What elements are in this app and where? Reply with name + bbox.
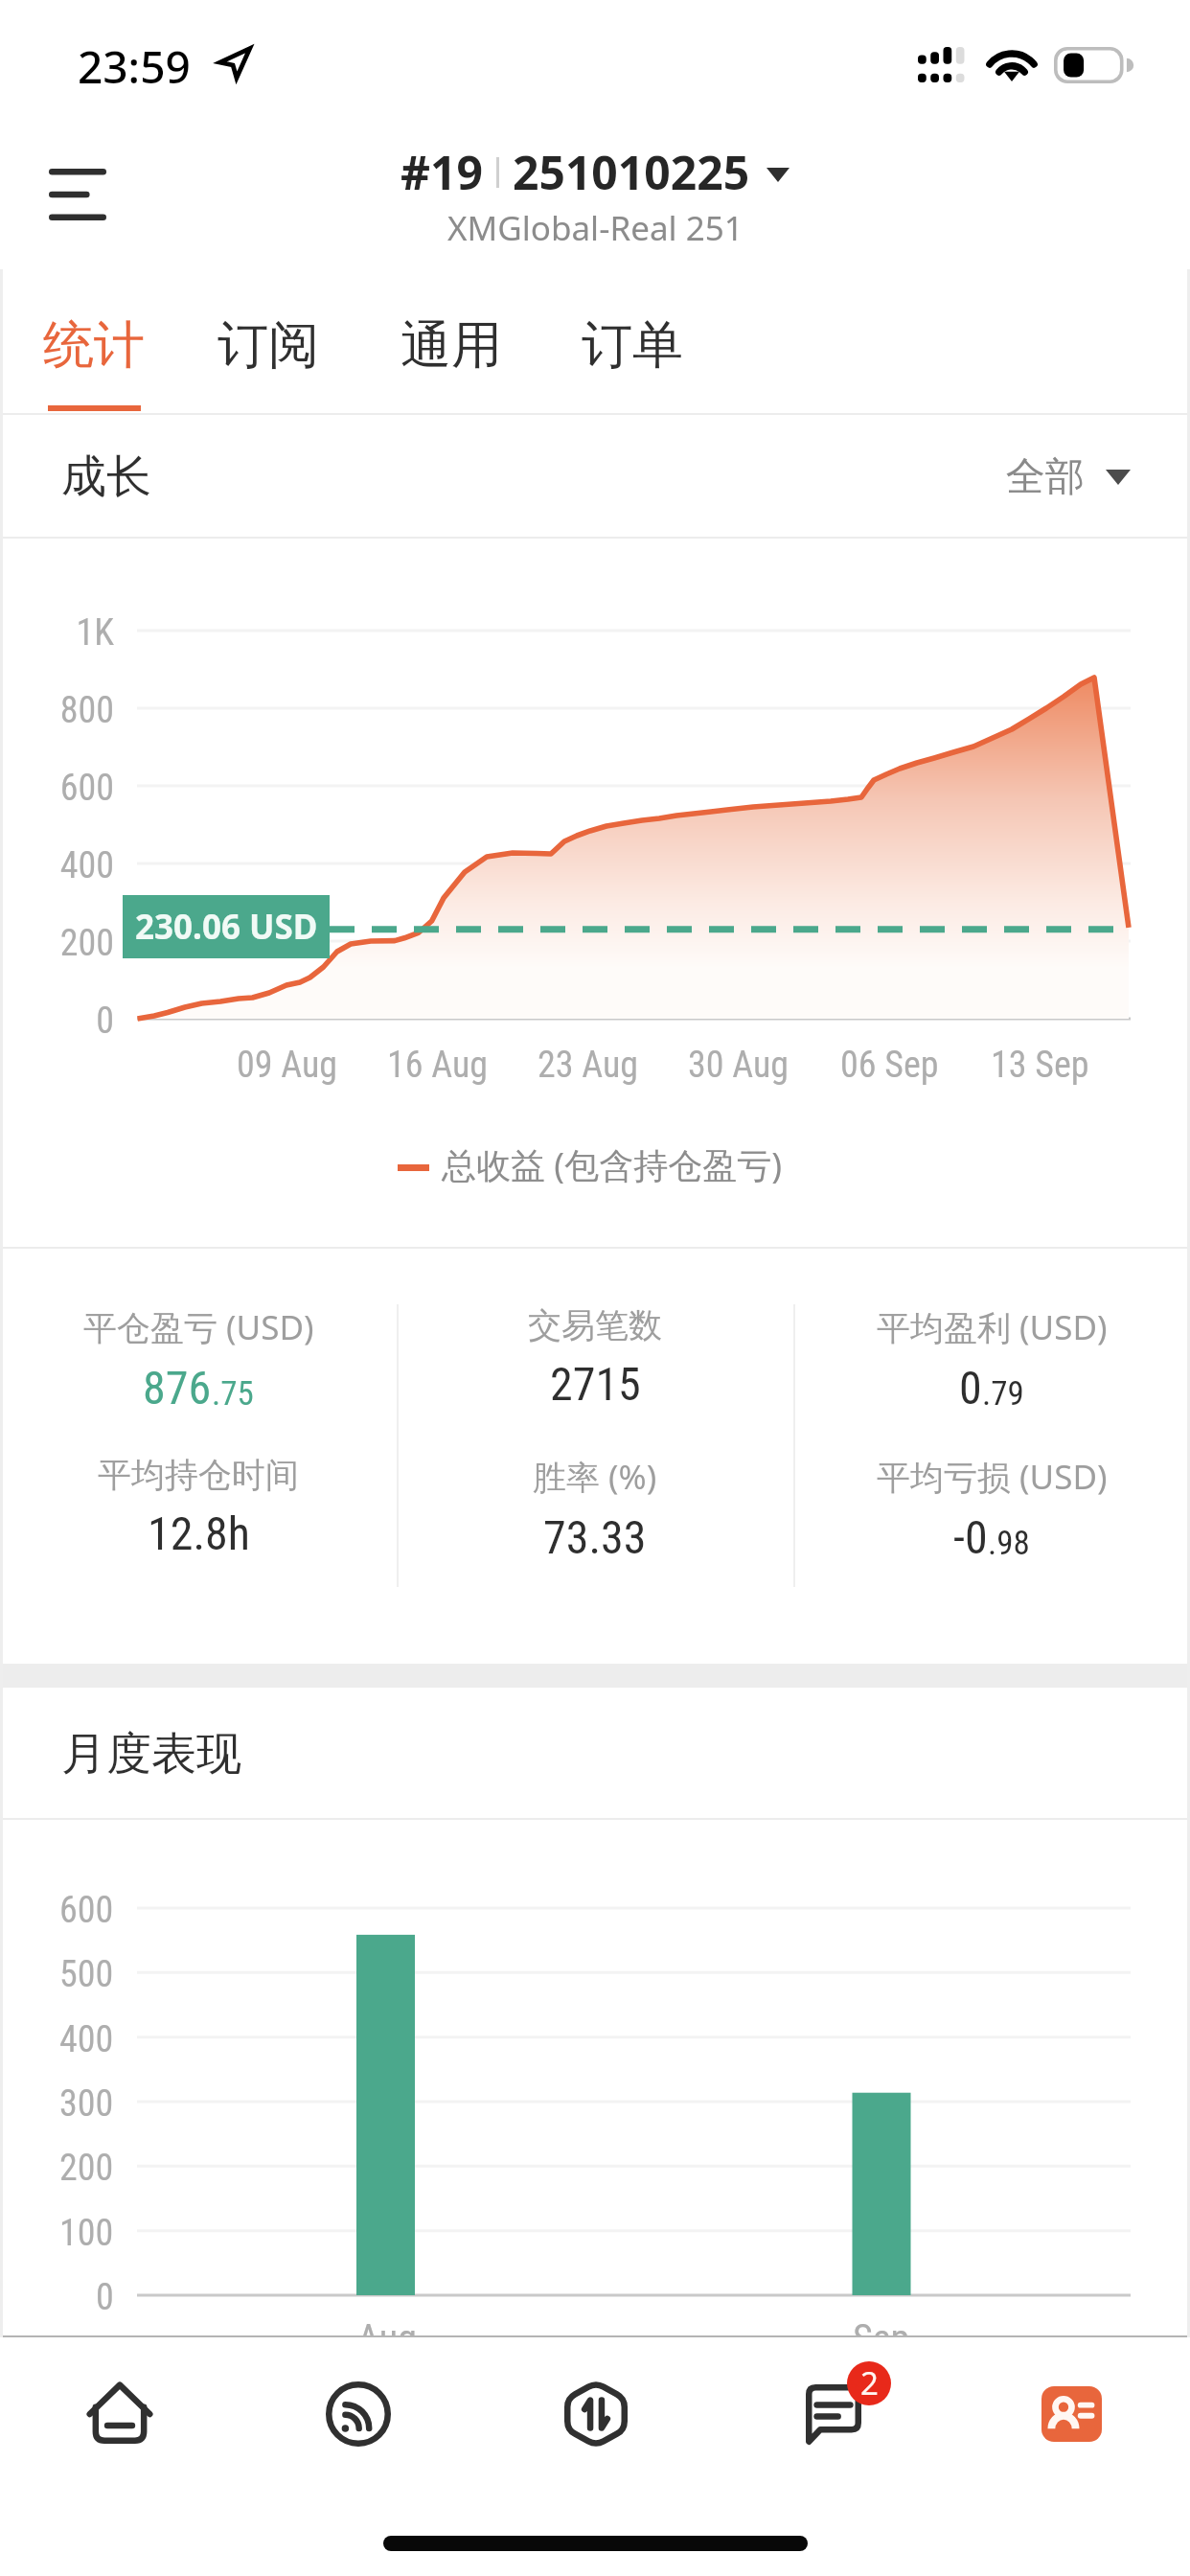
button[interactable]: 交易笔数 bbox=[397, 1304, 793, 1411]
staticText: 876 bbox=[143, 1361, 212, 1414]
button[interactable]: 通用 bbox=[390, 268, 513, 415]
staticText: 全部 bbox=[1006, 452, 1085, 502]
staticText: 平仓盈亏 (USD) bbox=[83, 1304, 314, 1350]
staticText: .79 bbox=[982, 1374, 1024, 1414]
staticText: 400 bbox=[59, 2018, 114, 2061]
staticText: 1K bbox=[76, 611, 114, 655]
staticText: .75 bbox=[212, 1374, 254, 1414]
staticText: #19 bbox=[400, 141, 483, 203]
button[interactable]: 平均亏损 (USD) bbox=[793, 1454, 1190, 1564]
button[interactable]: 平均持仓时间 bbox=[0, 1454, 397, 1560]
staticText: 0 bbox=[96, 1000, 114, 1043]
staticText: 交易笔数 bbox=[528, 1304, 662, 1346]
staticText: 平均亏损 (USD) bbox=[877, 1454, 1108, 1500]
staticText: 2715 bbox=[550, 1357, 641, 1411]
button[interactable]: Feed bbox=[239, 2337, 477, 2491]
staticText: 平均盈利 (USD) bbox=[877, 1304, 1108, 1350]
staticText: 200 bbox=[59, 922, 114, 965]
staticText: 13 Sep bbox=[991, 1044, 1089, 1087]
staticText: 300 bbox=[59, 2082, 114, 2126]
staticText: 成长 bbox=[61, 448, 151, 505]
staticText: 23 Aug bbox=[538, 1044, 639, 1087]
staticText: 251010225 bbox=[513, 141, 750, 203]
staticText: 月度表现 bbox=[61, 1726, 241, 1782]
staticText: Sep bbox=[853, 2316, 910, 2361]
staticText: 统计 bbox=[43, 313, 145, 378]
button[interactable]: 统计 bbox=[33, 268, 155, 415]
staticText: 胜率 (%) bbox=[533, 1454, 657, 1500]
button[interactable]: 平仓盈亏 (USD) bbox=[0, 1304, 397, 1414]
staticText: 100 bbox=[59, 2212, 114, 2255]
button[interactable]: 订单 bbox=[571, 268, 694, 415]
staticText: 800 bbox=[59, 689, 114, 732]
staticText: 订单 bbox=[582, 313, 683, 378]
button[interactable]: 订阅 bbox=[207, 268, 330, 415]
button[interactable]: Trade bbox=[477, 2337, 715, 2491]
staticText: 2 bbox=[860, 2361, 879, 2404]
staticText: Aug bbox=[357, 2316, 417, 2361]
staticText: 600 bbox=[59, 767, 114, 810]
button[interactable]: #19 bbox=[400, 141, 790, 251]
staticText: 16 Aug bbox=[387, 1044, 489, 1087]
staticText: 总收益 (包含持仓盈亏) bbox=[442, 1141, 782, 1188]
button[interactable]: 胜率 (%) bbox=[397, 1454, 793, 1564]
button[interactable]: 平均盈利 (USD) bbox=[793, 1304, 1190, 1414]
button[interactable]: Account bbox=[952, 2337, 1190, 2491]
staticText: 400 bbox=[59, 844, 114, 887]
staticText: 500 bbox=[59, 1953, 114, 1996]
staticText: 通用 bbox=[400, 313, 502, 378]
staticText: 09 Aug bbox=[237, 1044, 338, 1087]
staticText: 订阅 bbox=[217, 313, 319, 378]
staticText: 0 bbox=[96, 2276, 114, 2319]
staticText: 30 Aug bbox=[688, 1044, 790, 1087]
staticText: 12.8h bbox=[148, 1506, 250, 1560]
staticText: -0 bbox=[953, 1510, 988, 1564]
staticText: 23:59 bbox=[78, 36, 191, 97]
staticText: .98 bbox=[988, 1524, 1030, 1563]
staticText: 200 bbox=[59, 2147, 114, 2190]
staticText: XMGlobal-Real 251 bbox=[447, 205, 744, 251]
button[interactable]: Messages bbox=[715, 2337, 952, 2491]
staticText: 600 bbox=[59, 1889, 114, 1932]
button[interactable]: 全部 bbox=[968, 415, 1190, 539]
staticText: 230.06 USD bbox=[135, 904, 318, 950]
staticText: 73.33 bbox=[543, 1510, 647, 1564]
staticText: 平均持仓时间 bbox=[98, 1454, 299, 1496]
staticText: 06 Sep bbox=[840, 1044, 939, 1087]
staticText: 0 bbox=[959, 1361, 982, 1414]
button[interactable]: Menu bbox=[15, 132, 140, 257]
button[interactable]: Home bbox=[0, 2337, 239, 2491]
